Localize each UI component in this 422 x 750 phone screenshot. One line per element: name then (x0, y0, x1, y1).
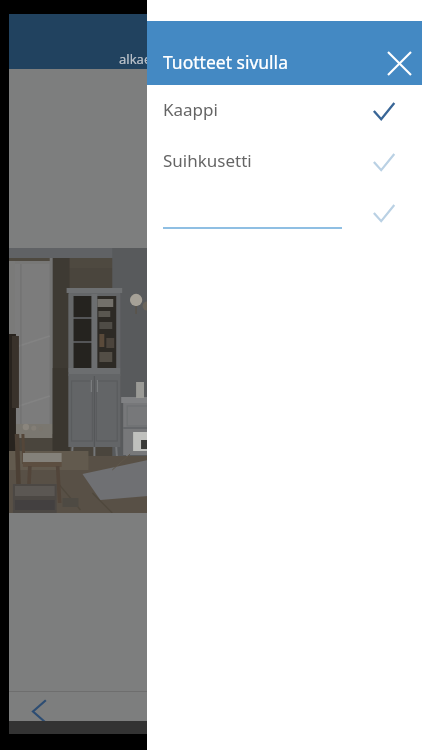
staticText: Kaappi (163, 98, 218, 121)
button[interactable]: Close (377, 41, 421, 85)
button[interactable]: Suihkusetti (147, 136, 422, 187)
staticText: Suihkusetti (163, 149, 252, 172)
staticText: Tuotteet sivulla (163, 50, 288, 74)
button[interactable]: Kaappi (147, 85, 422, 136)
button[interactable] (147, 187, 422, 238)
staticText: alkaen (119, 50, 160, 68)
button[interactable]: Back (33, 701, 45, 722)
